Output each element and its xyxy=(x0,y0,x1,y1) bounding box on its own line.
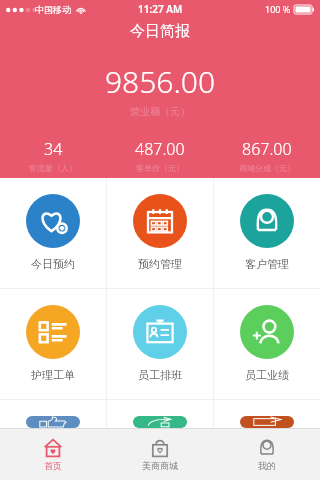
button[interactable]: 员工排班 xyxy=(107,289,213,399)
staticText: 487.00 xyxy=(135,138,185,160)
button[interactable]: ThumbUp xyxy=(0,400,106,428)
staticText: 客单价（元） xyxy=(136,163,184,173)
button[interactable]: Share xyxy=(107,400,213,428)
button[interactable]: 今日预约 xyxy=(0,178,106,288)
button[interactable]: 护理工单 xyxy=(0,289,106,399)
button[interactable]: 客户管理 xyxy=(214,178,320,288)
staticText: 员工排班 xyxy=(138,368,182,382)
button[interactable]: 美商商城 xyxy=(106,428,213,480)
staticText: 护理工单 xyxy=(31,368,75,382)
staticText: 客户管理 xyxy=(245,257,289,271)
staticText: 美商商城 xyxy=(142,460,178,471)
staticText: 预约管理 xyxy=(138,257,182,271)
staticText: 34 xyxy=(44,138,63,160)
staticText: 11:27 AM xyxy=(138,2,183,16)
staticText: 今日简报 xyxy=(0,22,320,41)
staticText: 今日预约 xyxy=(31,257,75,271)
staticText: 员工业绩 xyxy=(245,368,289,382)
staticText: 100 % xyxy=(265,3,291,15)
button[interactable]: Card xyxy=(214,400,320,428)
staticText: 中国移动 xyxy=(35,4,71,15)
staticText: 客流量（人） xyxy=(29,163,77,173)
staticText: 首页 xyxy=(44,460,62,471)
staticText: 我的 xyxy=(258,460,276,471)
button[interactable]: 首页 xyxy=(0,428,106,480)
staticText: 营业额（元） xyxy=(0,105,320,118)
staticText: 867.00 xyxy=(242,138,292,160)
button[interactable]: 我的 xyxy=(213,428,320,480)
staticText: 9856.00 xyxy=(0,61,320,102)
staticText: 商城分成（元） xyxy=(239,163,295,173)
button[interactable]: 预约管理 xyxy=(107,178,213,288)
button[interactable]: 员工业绩 xyxy=(214,289,320,399)
